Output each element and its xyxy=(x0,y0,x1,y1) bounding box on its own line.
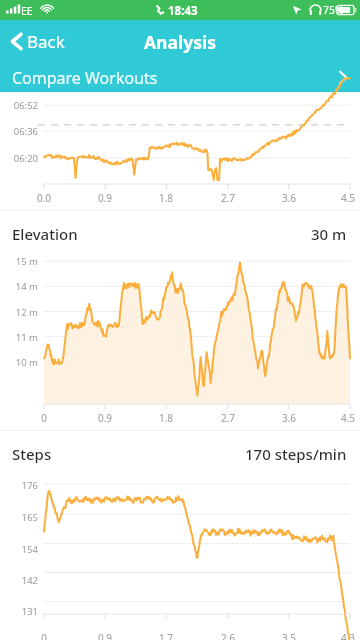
staticText: 165 xyxy=(0,511,38,524)
staticText: 75% xyxy=(323,3,344,17)
staticText: 2.7 xyxy=(214,411,242,425)
other: Compare Workouts xyxy=(338,69,348,86)
staticText: 06:36 xyxy=(0,125,38,138)
staticText: 2.6 xyxy=(214,631,242,640)
staticText: 06:52 xyxy=(0,99,38,112)
staticText: 154 xyxy=(0,543,38,556)
staticText: Elevation xyxy=(12,224,78,244)
staticText: 15 m xyxy=(0,255,38,268)
staticText: 0 xyxy=(30,411,58,425)
staticText: 131 xyxy=(0,605,38,618)
staticText: Compare Workouts xyxy=(12,67,158,89)
button[interactable]: Compare Workouts xyxy=(0,63,360,92)
staticText: 18:43 xyxy=(168,3,198,19)
staticText: 3.5 xyxy=(275,631,303,640)
staticText: 4.3 xyxy=(336,631,360,640)
staticText: 4.5 xyxy=(336,191,360,205)
button[interactable]: Back xyxy=(0,22,81,61)
staticText: 176 xyxy=(0,479,38,492)
staticText: 14 m xyxy=(0,280,38,293)
staticText: 1.8 xyxy=(152,411,180,425)
staticText: 12 m xyxy=(0,306,38,319)
staticText: Analysis xyxy=(144,30,216,54)
staticText: 2.7 xyxy=(214,191,242,205)
staticText: 0 xyxy=(30,631,58,640)
staticText: Steps xyxy=(12,444,52,464)
staticText: 0.9 xyxy=(91,631,119,640)
staticText: 170 steps/min xyxy=(245,444,347,464)
staticText: 11 m xyxy=(0,331,38,344)
staticText: 4.5 xyxy=(336,411,360,425)
staticText: 06:20 xyxy=(0,152,38,165)
staticText: 0.0 xyxy=(30,191,58,205)
staticText: EE xyxy=(21,4,33,18)
staticText: 3.6 xyxy=(275,191,303,205)
staticText: 142 xyxy=(0,574,38,587)
staticText: 30 m xyxy=(311,224,347,244)
staticText: 0.9 xyxy=(91,191,119,205)
staticText: 1.8 xyxy=(152,191,180,205)
staticText: 0.9 xyxy=(91,411,119,425)
staticText: Back xyxy=(27,30,65,53)
staticText: 1.7 xyxy=(152,631,180,640)
staticText: 10 m xyxy=(0,356,38,369)
staticText: 3.6 xyxy=(275,411,303,425)
